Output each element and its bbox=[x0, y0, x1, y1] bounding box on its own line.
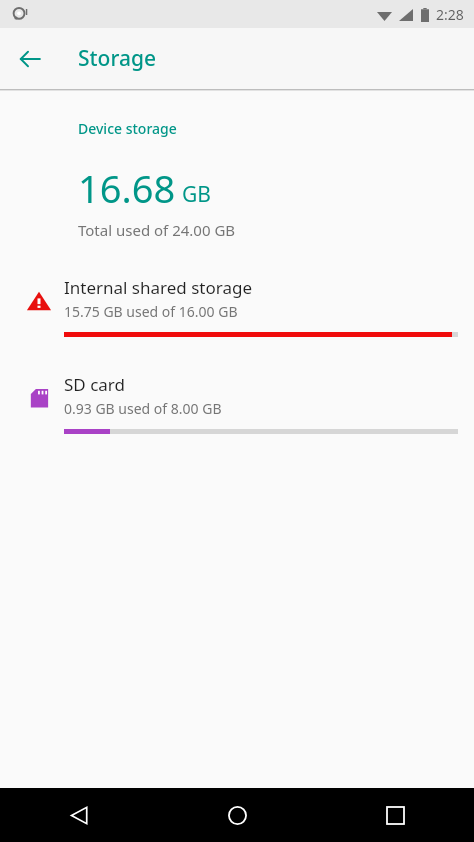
staticText: 16.68 bbox=[78, 162, 176, 214]
staticText: Total used of 24.00 GB bbox=[78, 220, 236, 240]
button[interactable]: Home bbox=[158, 788, 316, 842]
staticText: Device storage bbox=[78, 119, 177, 138]
staticText: 15.75 GB used of 16.00 GB bbox=[64, 302, 238, 321]
button[interactable]: Storage warning bbox=[0, 270, 474, 339]
button[interactable]: SD card bbox=[0, 367, 474, 436]
button[interactable]: Recent apps bbox=[316, 788, 474, 842]
staticText: 2:28 bbox=[436, 5, 464, 24]
other: SD card bbox=[14, 369, 64, 427]
button[interactable]: Back bbox=[0, 788, 158, 842]
staticText: GB bbox=[182, 180, 211, 209]
staticText: 0.93 GB used of 8.00 GB bbox=[64, 399, 222, 418]
staticText: Storage bbox=[78, 44, 156, 73]
button[interactable]: Back bbox=[6, 35, 54, 83]
staticText: SD card bbox=[64, 373, 125, 396]
other: Storage warning bbox=[14, 272, 64, 330]
staticText: Internal shared storage bbox=[64, 276, 253, 299]
